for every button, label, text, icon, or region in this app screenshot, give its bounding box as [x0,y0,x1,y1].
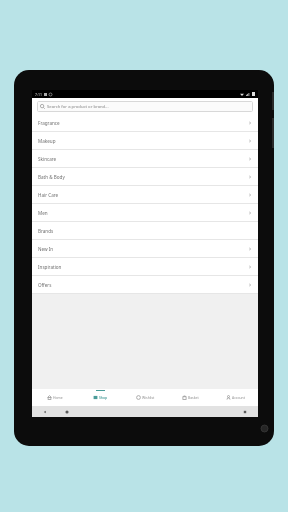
button[interactable]: Back [42,409,48,415]
staticText: Hair Care [38,192,59,198]
button[interactable]: Fragrance [32,114,258,132]
staticText: New In [38,246,54,252]
button[interactable]: Skincare [32,150,258,168]
staticText: Fragrance [38,120,60,126]
button[interactable]: Account [213,389,258,406]
button[interactable]: Recents [242,409,248,415]
button[interactable]: Inspiration [32,258,258,276]
staticText: Skincare [38,156,57,162]
button[interactable]: Hair Care [32,186,258,204]
staticText: Offers [38,282,52,288]
staticText: Home [53,395,63,400]
button[interactable]: Shop [78,389,123,406]
button[interactable]: Brands [32,222,258,240]
button[interactable]: Search for a product or brand... [37,101,253,112]
button[interactable]: Basket [168,389,213,406]
staticText: Account [232,395,245,400]
staticText: Inspiration [38,264,62,270]
staticText: Makeup [38,138,56,144]
staticText: Search for a product or brand... [47,104,109,110]
button[interactable]: Makeup [32,132,258,150]
staticText: Bath & Body [38,174,65,180]
button[interactable]: New In [32,240,258,258]
button[interactable]: Bath & Body [32,168,258,186]
button[interactable]: Offers [32,276,258,294]
staticText: Shop [99,395,108,400]
staticText: 7:11 [35,92,42,97]
staticText: Basket [188,395,199,400]
staticText: Wishlist [142,395,155,400]
staticText: Brands [38,228,54,234]
button[interactable]: Home [32,389,78,406]
staticText: Men [38,210,48,216]
button[interactable]: Home [64,409,70,415]
button[interactable]: Wishlist [123,389,168,406]
button[interactable]: Men [32,204,258,222]
